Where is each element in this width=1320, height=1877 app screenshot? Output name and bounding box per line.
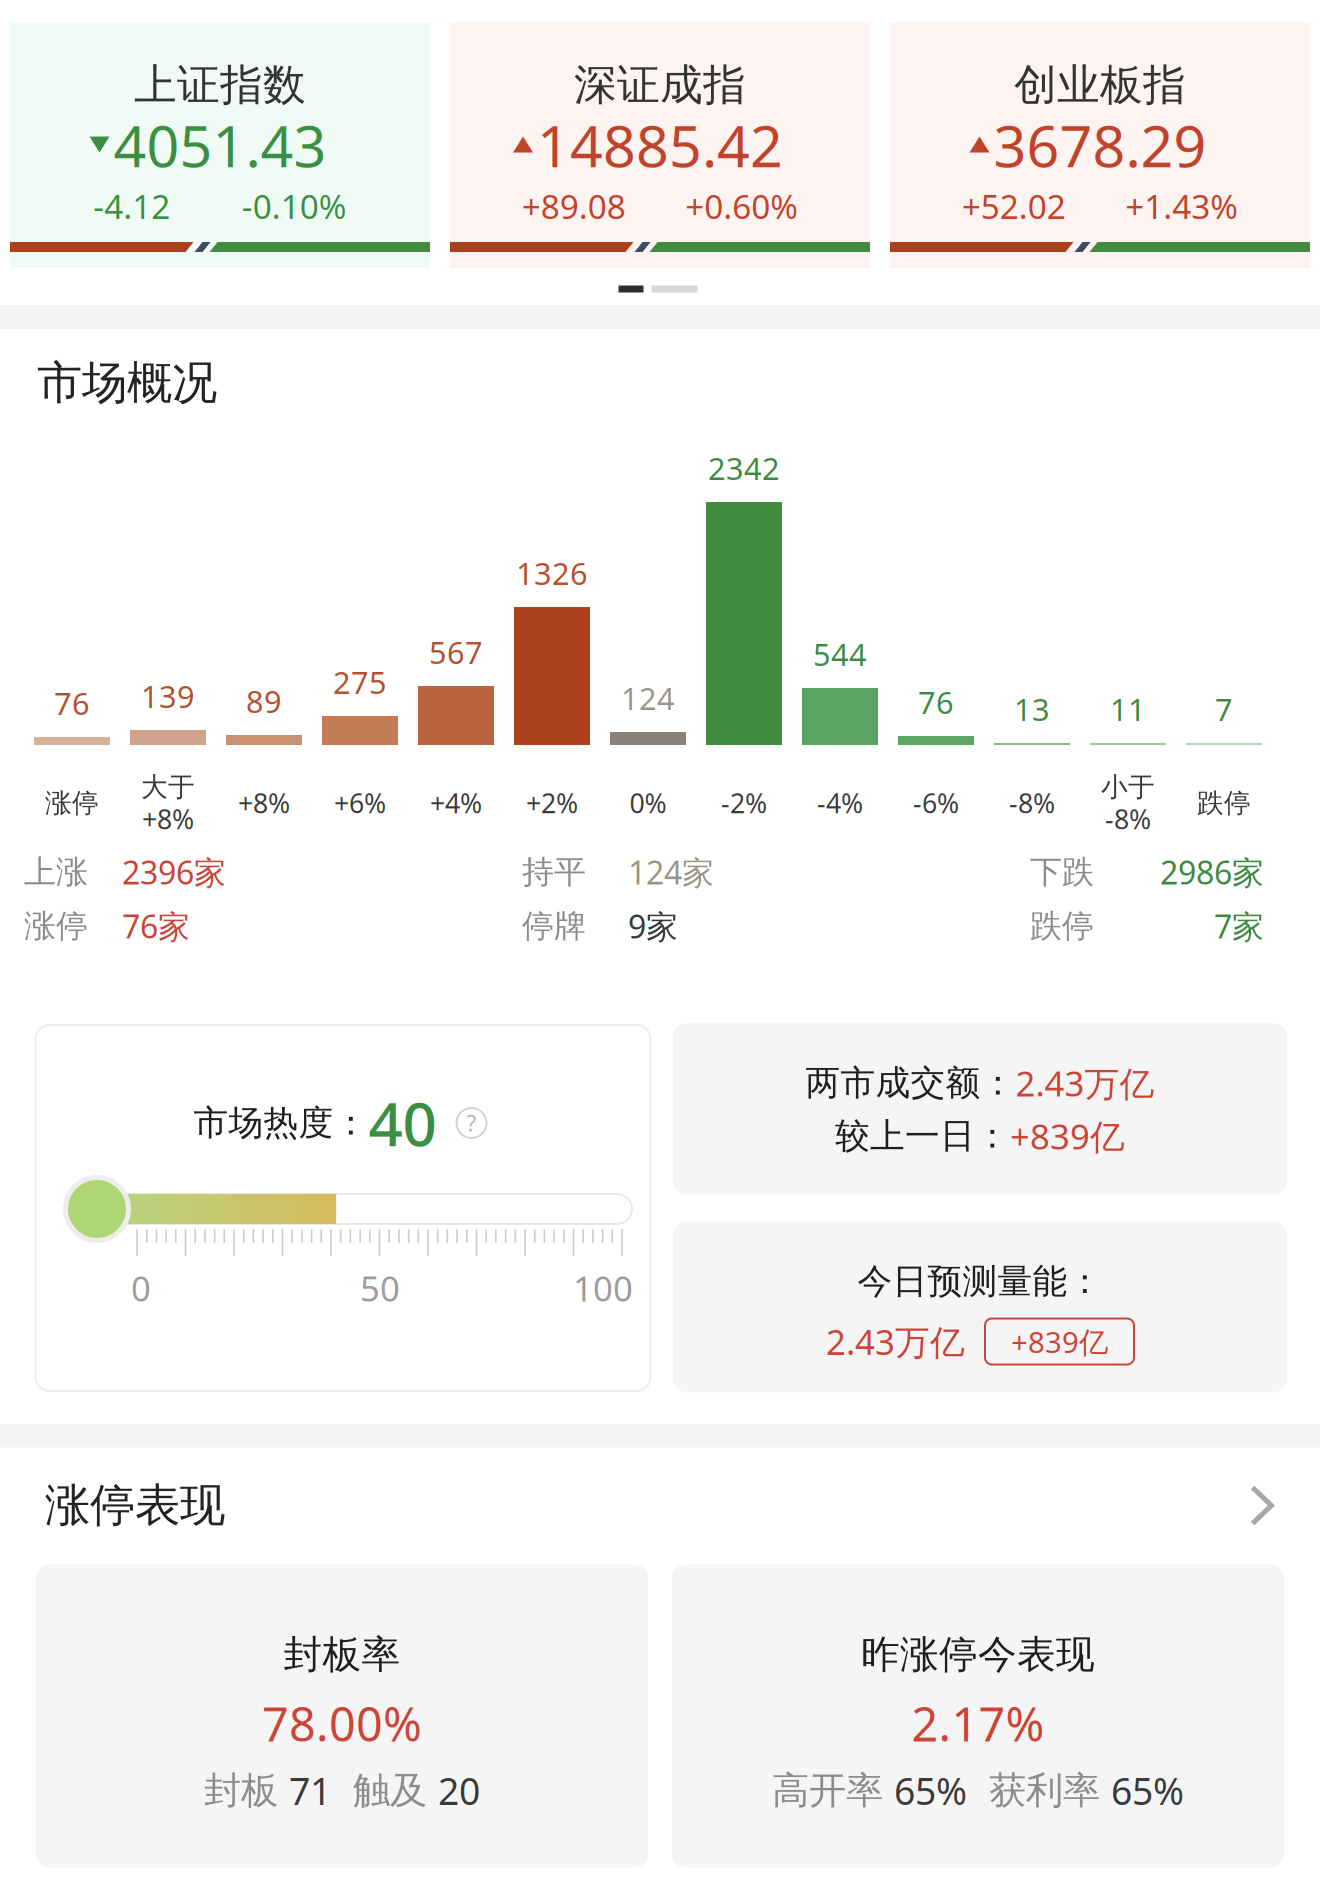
- staticText: 今日预测量能：: [857, 1260, 1102, 1303]
- staticText: 40: [368, 1083, 436, 1163]
- staticText: 567: [429, 632, 483, 672]
- staticText: 65%: [894, 1766, 967, 1815]
- staticText: 创业板指: [1014, 59, 1186, 111]
- staticText: 涨停表现: [45, 1478, 225, 1533]
- button[interactable]: 深证成指: [450, 22, 870, 268]
- staticText: 124: [621, 678, 675, 718]
- button[interactable]: 涨停表现: [0, 1447, 1320, 1564]
- staticText: 71: [289, 1766, 331, 1815]
- staticText: 2.43万亿: [1015, 1060, 1154, 1106]
- staticText: +4%: [430, 785, 482, 821]
- staticText: 两市成交额：: [805, 1062, 1015, 1104]
- staticText: 275: [333, 662, 387, 702]
- staticText: ?: [466, 1108, 476, 1138]
- staticText: 7: [1215, 689, 1233, 729]
- staticText: 544: [813, 634, 867, 674]
- staticText: 89: [246, 681, 282, 721]
- staticText: 高开率: [772, 1768, 894, 1813]
- staticText: +6%: [334, 785, 386, 821]
- staticText: 封板率: [283, 1631, 400, 1678]
- staticText: -2%: [721, 785, 767, 821]
- button[interactable]: 昨涨停今表现: [672, 1564, 1284, 1867]
- staticText: 小于: [1101, 771, 1155, 803]
- staticText: +0.60%: [685, 184, 798, 228]
- staticText: 76: [918, 682, 954, 722]
- button[interactable]: 创业板指: [890, 22, 1310, 268]
- button[interactable]: 封板率: [36, 1564, 648, 1867]
- staticText: 0%: [629, 785, 666, 821]
- staticText: 65%: [1111, 1766, 1184, 1815]
- staticText: -4.12: [93, 184, 170, 228]
- staticText: 13: [1014, 689, 1050, 729]
- staticText: 11: [1110, 689, 1146, 729]
- staticText: 139: [141, 676, 195, 716]
- staticText: 0: [131, 1265, 151, 1311]
- staticText: 涨停: [24, 906, 88, 946]
- staticText: 50: [360, 1265, 400, 1311]
- staticText: 昨涨停今表现: [861, 1631, 1095, 1678]
- staticText: 2.17%: [911, 1692, 1044, 1754]
- staticText: 市场概况: [37, 355, 217, 411]
- staticText: +52.02: [962, 184, 1066, 228]
- staticText: +89.08: [522, 184, 626, 228]
- staticText: 124家: [628, 851, 714, 893]
- staticText: 76家: [122, 905, 190, 947]
- staticText: +1.43%: [1125, 184, 1238, 228]
- staticText: 2396家: [122, 851, 226, 893]
- staticText: +839亿: [1011, 1322, 1108, 1361]
- button[interactable]: 上证指数: [10, 22, 430, 268]
- staticText: -8%: [1009, 785, 1055, 821]
- staticText: -6%: [913, 785, 959, 821]
- staticText: 封板: [204, 1768, 289, 1813]
- staticText: 2.43万亿: [826, 1318, 965, 1364]
- staticText: -8%: [1105, 801, 1151, 837]
- staticText: 获利率: [989, 1768, 1111, 1813]
- staticText: 7家: [1214, 905, 1264, 947]
- staticText: +8%: [238, 785, 290, 821]
- staticText: 跌停: [1030, 906, 1094, 946]
- staticText: 涨停: [45, 787, 99, 819]
- button[interactable]: 今日预测量能：: [673, 1221, 1287, 1392]
- staticText: 20: [438, 1766, 480, 1815]
- staticText: 100: [573, 1265, 633, 1311]
- staticText: 上涨: [24, 852, 88, 892]
- staticText: 78.00%: [262, 1692, 422, 1754]
- staticText: 持平: [522, 852, 586, 892]
- staticText: 下跌: [1030, 852, 1094, 892]
- staticText: 2342: [708, 448, 780, 488]
- staticText: +8%: [142, 801, 194, 837]
- staticText: 大于: [141, 771, 195, 803]
- staticText: 深证成指: [574, 59, 746, 111]
- staticText: 4051.43: [113, 107, 326, 183]
- staticText: 停牌: [522, 906, 586, 946]
- staticText: 9家: [628, 905, 678, 947]
- staticText: 市场热度：: [193, 1102, 368, 1144]
- staticText: 2986家: [1160, 851, 1264, 893]
- button[interactable]: 指数分页: [603, 273, 713, 305]
- staticText: 触及: [353, 1768, 438, 1813]
- button[interactable]: 两市成交额：: [673, 1023, 1287, 1195]
- staticText: 1326: [516, 553, 588, 593]
- staticText: 3678.29: [993, 107, 1206, 183]
- staticText: 上证指数: [134, 59, 306, 111]
- staticText: 14885.42: [537, 107, 783, 183]
- staticText: -4%: [817, 785, 863, 821]
- staticText: 较上一日：: [835, 1115, 1010, 1157]
- staticText: 跌停: [1197, 787, 1251, 819]
- staticText: +839亿: [1010, 1113, 1125, 1159]
- staticText: +2%: [526, 785, 578, 821]
- staticText: 76: [54, 683, 90, 723]
- staticText: -0.10%: [242, 184, 347, 228]
- button[interactable]: 市场热度说明: [456, 1108, 486, 1138]
